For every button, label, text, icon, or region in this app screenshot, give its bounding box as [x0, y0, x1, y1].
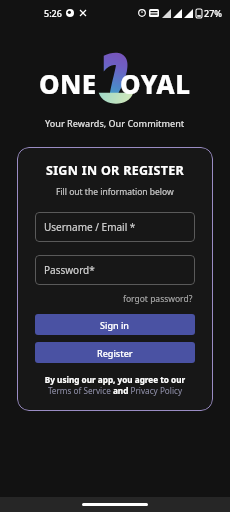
staticText: 27% — [204, 7, 222, 19]
button[interactable]: Username / Email * — [35, 212, 195, 242]
staticText: SIGN IN OR REGISTER — [46, 162, 184, 179]
staticText: OYAL — [120, 66, 191, 101]
staticText: Register — [97, 347, 133, 359]
button[interactable]: Sign in — [35, 314, 195, 335]
staticText: forgot password? — [123, 293, 193, 305]
staticText: ONE — [39, 66, 97, 101]
staticText: 5:26 — [44, 7, 62, 19]
staticText: Sign in — [100, 319, 130, 331]
staticText: By using our app, you agree to our Terms… — [35, 374, 195, 396]
staticText: Your Rewards, Our Commitment — [45, 117, 185, 129]
staticText: Fill out the information below — [56, 186, 174, 198]
button[interactable]: Password* — [35, 255, 195, 285]
button[interactable]: forgot password? — [121, 291, 195, 307]
staticText: Username / Email * — [44, 220, 136, 234]
staticText: Password* — [44, 263, 95, 277]
button[interactable]: Register — [35, 342, 195, 363]
